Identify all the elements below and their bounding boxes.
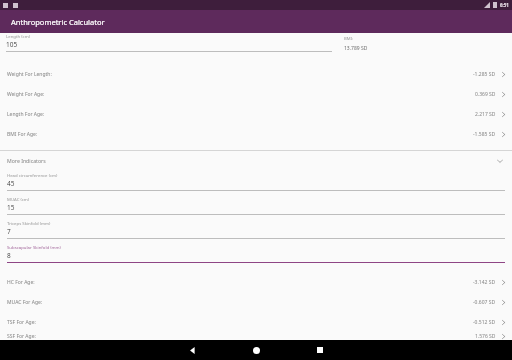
staticText: Head circumference (cm) <box>7 172 58 178</box>
staticText: More Indicators <box>7 157 46 164</box>
staticText: 15 <box>7 203 15 212</box>
staticText: MUAC (cm) <box>7 196 30 202</box>
button[interactable]: SSF For Age: <box>0 332 512 340</box>
staticText: -0.607 SD <box>473 299 496 306</box>
button[interactable]: Weight For Age: <box>0 84 512 104</box>
staticText: 0.369 SD <box>475 91 496 98</box>
staticText: Weight For Age: <box>7 91 45 98</box>
staticText: BMI: <box>344 36 354 42</box>
button[interactable]: Head circumference (cm) <box>0 170 512 194</box>
staticText: -1.285 SD <box>473 71 496 78</box>
staticText: Anthropometric Calculator <box>11 17 105 27</box>
staticText: 105 <box>6 40 18 49</box>
button[interactable]: More Indicators <box>0 151 512 170</box>
button[interactable]: Triceps Skinfold (mm) <box>0 218 512 242</box>
staticText: Length (cm) <box>6 33 30 39</box>
staticText: MUAC For Age: <box>7 299 43 306</box>
button[interactable]: HC For Age: <box>0 272 512 292</box>
button[interactable]: MUAC For Age: <box>0 292 512 312</box>
button[interactable]: TSF For Age: <box>0 312 512 332</box>
button[interactable]: Length For Age: <box>0 104 512 124</box>
other: Collapse <box>495 156 505 166</box>
button[interactable]: Home <box>224 340 288 360</box>
staticText: HC For Age: <box>7 279 35 286</box>
button[interactable]: Subscapular Skinfold (mm) <box>0 242 512 266</box>
staticText: 13.789 SD <box>344 45 368 52</box>
staticText: 1.576 SD <box>475 333 496 340</box>
staticText: TSF For Age: <box>7 319 36 326</box>
button[interactable]: Weight For Length: <box>0 64 512 84</box>
staticText: BMI For Age: <box>7 131 38 138</box>
staticText: -0.512 SD <box>473 319 496 326</box>
staticText: 6:51 <box>500 2 509 8</box>
button[interactable]: Recents <box>288 340 352 360</box>
staticText: 45 <box>7 179 15 188</box>
button[interactable]: Back <box>160 340 224 360</box>
staticText: Triceps Skinfold (mm) <box>7 220 51 226</box>
staticText: -3.142 SD <box>473 279 496 286</box>
staticText: SSF For Age: <box>7 333 36 340</box>
button[interactable]: BMI For Age: <box>0 124 512 144</box>
staticText: 8 <box>7 251 11 260</box>
staticText: -1.585 SD <box>473 131 496 138</box>
staticText: Weight For Length: <box>7 71 52 78</box>
staticText: Subscapular Skinfold (mm) <box>7 244 61 250</box>
staticText: Length For Age: <box>7 111 45 118</box>
staticText: 7 <box>7 227 11 236</box>
staticText: 2.217 SD <box>475 111 496 118</box>
button[interactable]: MUAC (cm) <box>0 194 512 218</box>
